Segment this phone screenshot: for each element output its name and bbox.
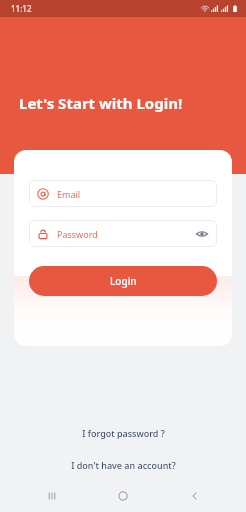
button[interactable]: Show password	[195, 227, 209, 241]
button[interactable]: I don't have an account?	[59, 456, 188, 474]
button[interactable]: Recent apps	[32, 480, 72, 512]
button[interactable]: Home	[103, 480, 143, 512]
staticText: Let's Start with Login!	[19, 93, 183, 113]
staticText: Login	[110, 274, 137, 288]
button[interactable]: Login	[29, 266, 217, 296]
staticText: I don't have an account?	[71, 459, 176, 471]
button[interactable]: Password	[29, 220, 217, 247]
staticText: 11:12	[11, 3, 32, 14]
staticText: I forgot password ?	[82, 427, 165, 439]
staticText: Password	[57, 228, 98, 240]
button[interactable]: Email	[29, 180, 217, 207]
staticText: Email	[57, 188, 81, 200]
button[interactable]: I forgot password ?	[70, 424, 177, 442]
button[interactable]: Back	[175, 480, 215, 512]
